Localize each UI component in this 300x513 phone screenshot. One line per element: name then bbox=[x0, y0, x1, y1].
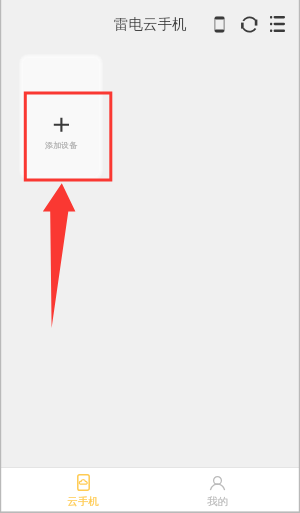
button[interactable]: Device bbox=[211, 12, 227, 36]
button[interactable]: Refresh bbox=[236, 12, 255, 36]
button[interactable]: 我的 bbox=[150, 468, 284, 513]
button[interactable]: 云手机 bbox=[16, 468, 150, 513]
staticText: 添加设备 bbox=[45, 140, 77, 150]
button[interactable]: List bbox=[267, 12, 283, 36]
button[interactable]: 添加设备 bbox=[23, 58, 99, 176]
staticText: 云手机 bbox=[67, 495, 99, 508]
staticText: 我的 bbox=[207, 495, 228, 508]
staticText: 雷电云手机 bbox=[114, 15, 187, 33]
